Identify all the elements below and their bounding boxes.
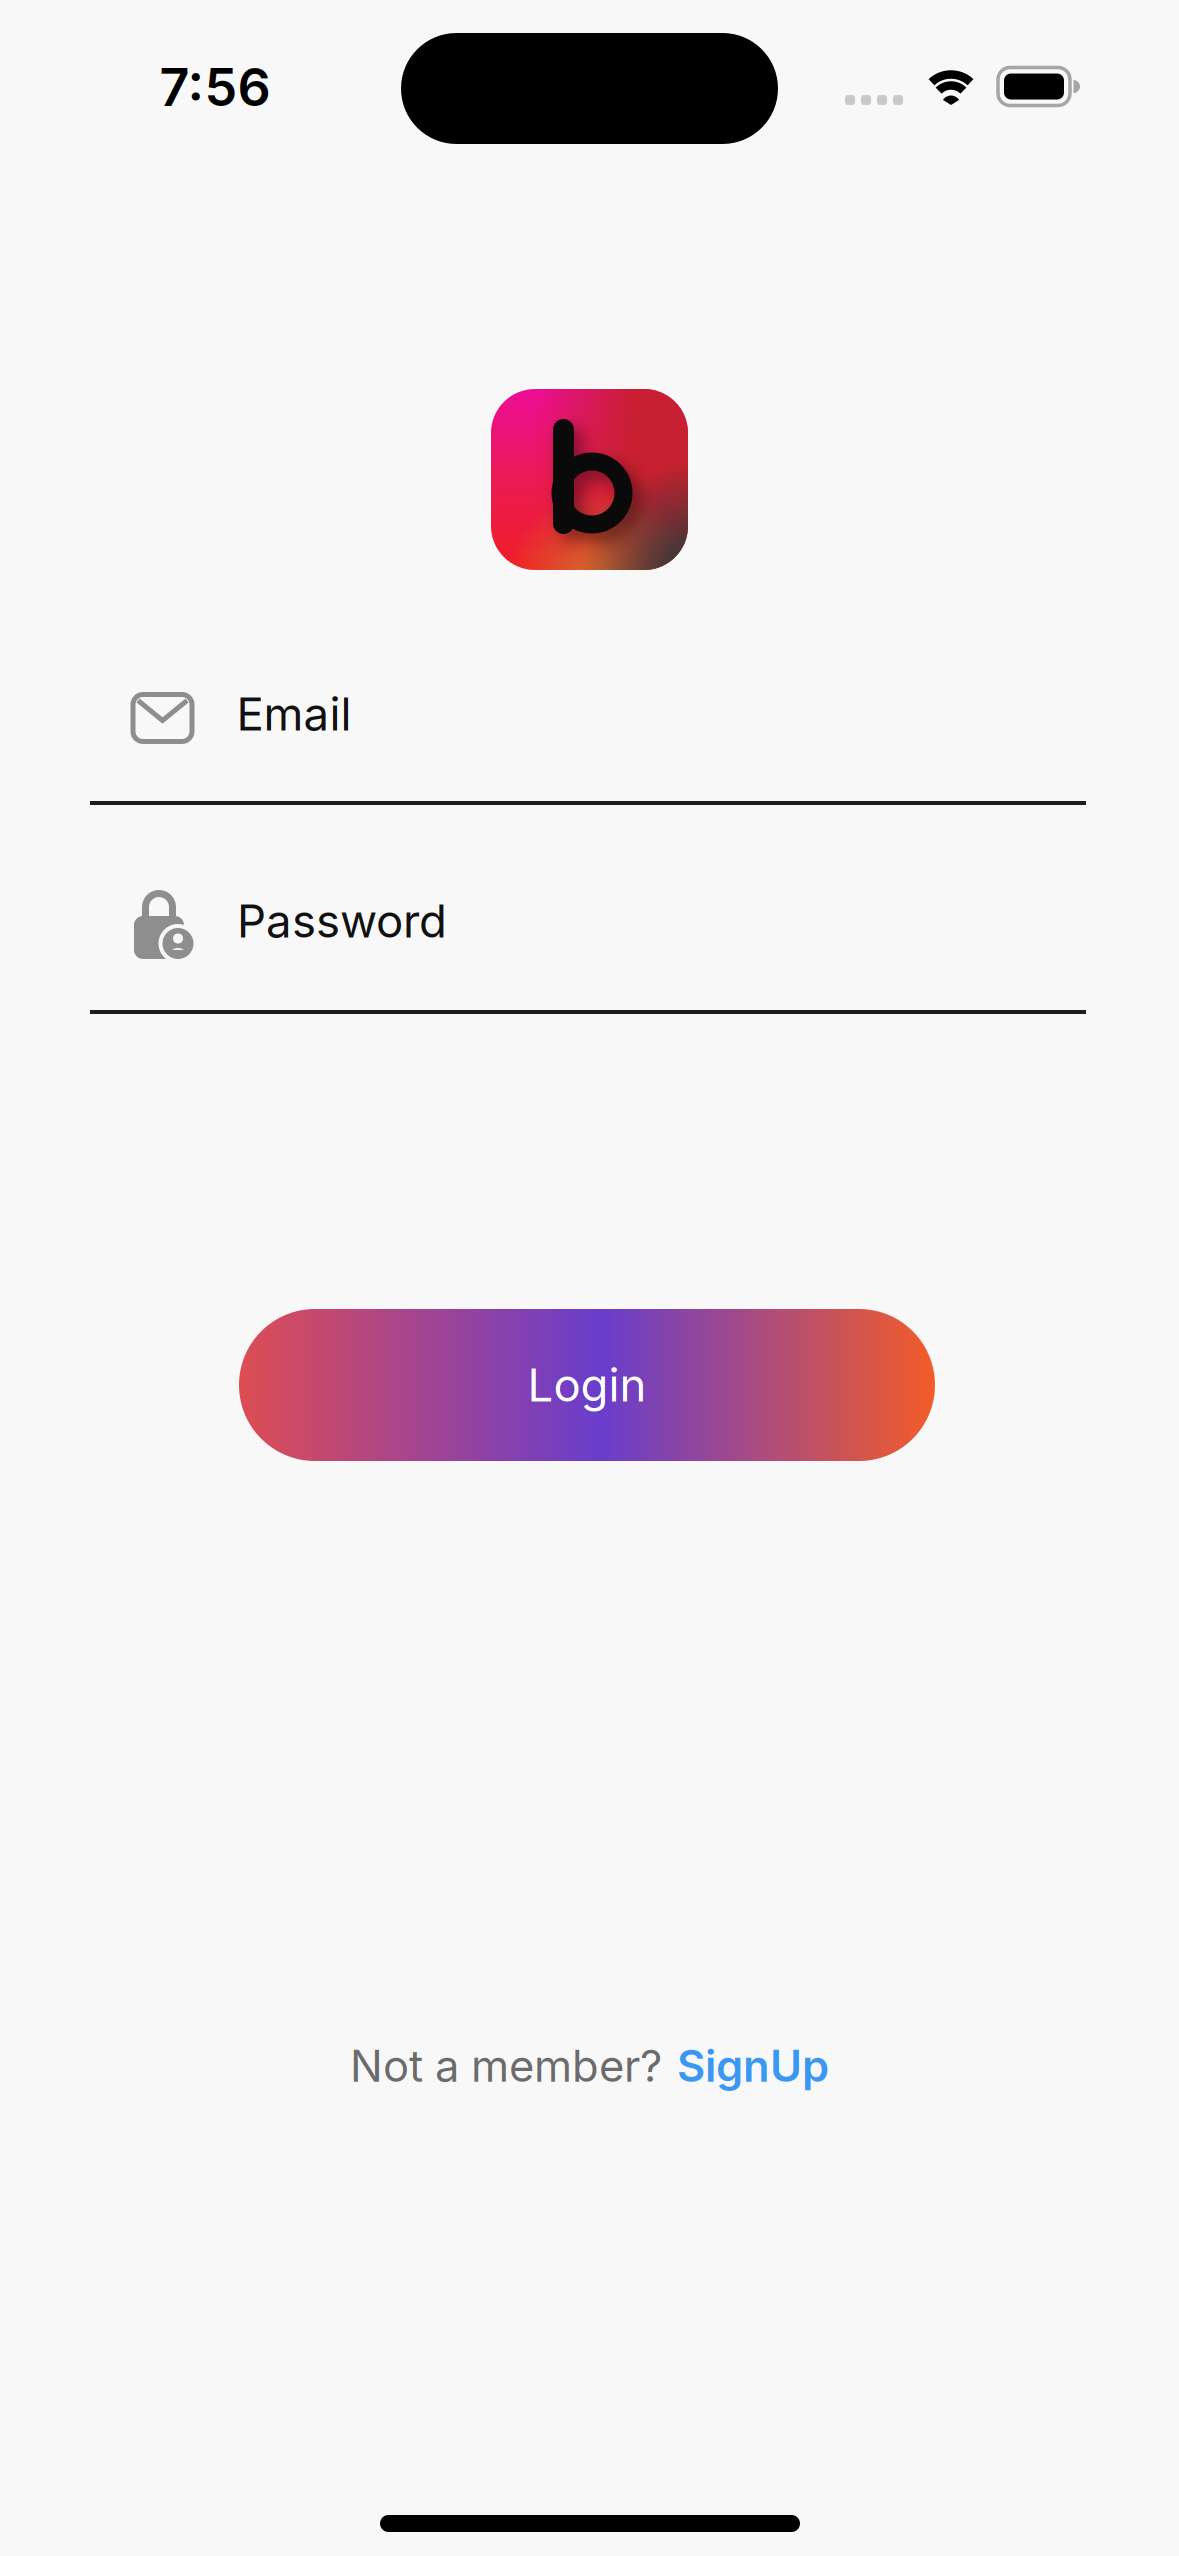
staticText: Email: [236, 686, 351, 742]
staticText: Password: [237, 893, 447, 949]
staticText: SignUp: [677, 2040, 829, 2092]
button[interactable]: Login: [239, 1309, 935, 1461]
staticText: 7:56: [159, 55, 270, 118]
button[interactable]: Email: [0, 645, 1179, 805]
staticText: Login: [527, 1357, 646, 1413]
button[interactable]: SignUp: [677, 2040, 829, 2092]
staticText: Not a member?: [350, 2040, 662, 2092]
button[interactable]: Password: [0, 845, 1179, 1015]
